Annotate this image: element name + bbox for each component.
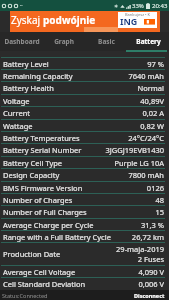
staticText: Voltage xyxy=(3,96,30,106)
staticText: 26,72 km xyxy=(131,232,164,242)
button[interactable]: Disconnect xyxy=(134,292,169,299)
button[interactable]: Current xyxy=(0,106,169,118)
button[interactable]: Battery Health xyxy=(0,81,169,93)
staticText: Current xyxy=(3,108,30,118)
staticText: 20:43 xyxy=(152,2,168,10)
staticText: Dashboard xyxy=(4,37,40,46)
staticText: podwójnie xyxy=(43,13,96,27)
staticText: 31,3 % xyxy=(140,220,164,230)
staticText: 48 xyxy=(155,195,164,205)
button[interactable]: Advertisement xyxy=(10,11,160,32)
button[interactable]: Average Charge per Cycle xyxy=(0,218,169,230)
staticText: 0,006 V xyxy=(138,279,164,289)
staticText: Battery Cell Type xyxy=(3,158,63,168)
button[interactable]: BMS Firmware Version xyxy=(0,181,169,193)
button[interactable]: Battery xyxy=(127,32,169,51)
staticText: 15 xyxy=(155,207,164,217)
staticText: 0,82 W xyxy=(140,121,164,131)
staticText: Range with a Full Battery Cycle xyxy=(3,232,111,242)
staticText: 97 % xyxy=(147,59,164,69)
staticText: ING xyxy=(120,15,138,27)
staticText: Battery Temperatures xyxy=(3,133,80,143)
staticText: ·· xyxy=(20,2,23,9)
staticText: Battery Level xyxy=(3,59,49,69)
staticText: Average Cell Voltage xyxy=(3,267,76,277)
staticText: Battery Health xyxy=(3,83,54,93)
staticText: 7640 mAh xyxy=(128,71,164,81)
button[interactable]: Production Date xyxy=(0,242,169,264)
button[interactable]: Graph xyxy=(43,32,85,51)
staticText: 3JGGJ19EVB1430 xyxy=(105,145,164,155)
button[interactable]: Range with a Full Battery Cycle xyxy=(0,230,169,242)
staticText: 7800 mAh xyxy=(128,170,164,180)
staticText: Remaining Capacity xyxy=(3,71,73,81)
staticText: Cell Standard Deviation xyxy=(3,279,86,289)
button[interactable]: Basic xyxy=(85,32,127,51)
button[interactable]: Battery Level xyxy=(0,57,169,69)
staticText: Battery Serial Number xyxy=(3,145,82,155)
staticText: 33% xyxy=(132,2,144,10)
staticText: 4,090 V xyxy=(138,267,164,277)
staticText: Basic xyxy=(98,37,115,46)
button[interactable]: Number of Full Charges xyxy=(0,205,169,217)
button[interactable]: Battery Serial Number xyxy=(0,143,169,155)
staticText: ✶ xyxy=(114,3,119,9)
staticText: Normal xyxy=(137,83,164,93)
staticText: 0126 xyxy=(146,183,164,193)
staticText: 24°C/24°C xyxy=(128,133,164,143)
staticText: Production Date xyxy=(3,249,61,259)
staticText: 29-maja-2019 2 Fuses xyxy=(116,244,164,264)
button[interactable]: Dashboard xyxy=(0,32,43,51)
staticText: Purple LG 10A xyxy=(114,158,164,168)
staticText: BMS Firmware Version xyxy=(3,183,83,193)
button[interactable]: Average Cell Voltage xyxy=(0,265,169,277)
button[interactable]: Wattage xyxy=(0,119,169,131)
staticText: Battery xyxy=(136,37,161,46)
staticText: Number of Full Charges xyxy=(3,207,87,217)
staticText: Bankujesz • K xyxy=(125,12,151,17)
button[interactable]: Remaining Capacity xyxy=(0,69,169,81)
staticText: Design Capacity xyxy=(3,170,60,180)
button[interactable]: Voltage xyxy=(0,94,169,106)
staticText: Number of Charges xyxy=(3,195,73,205)
staticText: Wattage xyxy=(3,121,33,131)
staticText: Status:Connected xyxy=(2,292,48,299)
button[interactable]: Battery Cell Type xyxy=(0,156,169,168)
button[interactable]: Cell Standard Deviation xyxy=(0,277,169,289)
button[interactable]: Design Capacity xyxy=(0,168,169,180)
button[interactable]: Battery Temperatures xyxy=(0,131,169,143)
button[interactable]: Number of Charges xyxy=(0,193,169,205)
staticText: 0,02 A xyxy=(142,108,164,118)
staticText: Average Charge per Cycle xyxy=(3,220,94,230)
staticText: Zyskaj xyxy=(11,13,43,27)
staticText: 40,89V xyxy=(140,96,164,106)
staticText: Graph xyxy=(54,37,74,46)
